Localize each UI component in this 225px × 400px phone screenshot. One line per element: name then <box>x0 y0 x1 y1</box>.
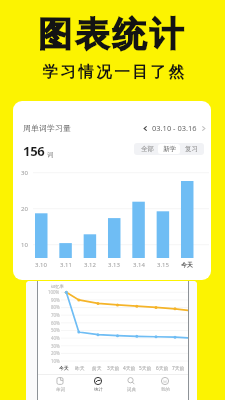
staticText: 全部 <box>141 145 154 153</box>
staticText: 3.13 <box>108 261 120 269</box>
staticText: 40% <box>51 335 60 341</box>
staticText: 3.11 <box>60 261 72 269</box>
staticText: 周单词学习量 <box>23 123 71 133</box>
staticText: 4天前 <box>123 365 136 372</box>
staticText: 50% <box>51 327 60 333</box>
staticText: 30% <box>51 343 60 349</box>
staticText: 3.10 <box>35 261 47 269</box>
staticText: 今天 <box>59 365 69 371</box>
staticText: 我的 <box>161 387 170 393</box>
button[interactable]: 4天前 <box>120 365 138 372</box>
button[interactable]: 7天前 <box>169 365 187 372</box>
staticText: 20 <box>21 205 28 213</box>
staticText: 记忆率 <box>51 284 64 289</box>
button[interactable]: 全部 <box>136 144 158 154</box>
button[interactable]: 6天前 <box>153 365 171 372</box>
staticText: 图表统计 <box>38 13 187 56</box>
button[interactable]: 词典 <box>120 377 142 393</box>
button[interactable]: 今天 <box>55 365 73 371</box>
button[interactable]: 昨天 <box>71 365 89 371</box>
staticText: 80% <box>51 304 60 310</box>
staticText: 70% <box>51 312 60 318</box>
staticText: 7天前 <box>172 365 185 372</box>
staticText: 单词 <box>56 387 65 393</box>
staticText: 156 <box>23 142 45 160</box>
button[interactable]: Date range <box>142 123 207 133</box>
staticText: 3.12 <box>84 261 96 269</box>
button[interactable]: 新学 <box>158 144 180 154</box>
staticText: 100% <box>48 289 60 295</box>
staticText: 词 <box>47 151 54 159</box>
staticText: 90% <box>51 297 60 303</box>
staticText: 60% <box>51 320 60 326</box>
staticText: 3.14 <box>133 261 145 269</box>
staticText: 复习 <box>185 145 198 153</box>
staticText: 3.15 <box>157 261 169 269</box>
staticText: 03.10 - 03.16 <box>152 123 197 133</box>
staticText: 20% <box>51 350 60 356</box>
staticText: 学习情况一目了然 <box>41 62 185 82</box>
staticText: 6天前 <box>156 365 169 372</box>
staticText: 3天前 <box>107 365 120 372</box>
staticText: 统计 <box>94 387 103 393</box>
button[interactable]: 我的 <box>154 377 176 393</box>
button[interactable]: 3天前 <box>104 365 122 372</box>
staticText: 5天前 <box>139 365 152 372</box>
button[interactable]: 复习 <box>180 144 202 154</box>
button[interactable]: 5天前 <box>136 365 154 372</box>
staticText: 词典 <box>127 387 136 393</box>
button[interactable]: 单词 <box>49 377 71 393</box>
staticText: 30 <box>21 169 28 177</box>
staticText: 10% <box>51 358 60 364</box>
staticText: 新学 <box>163 145 176 153</box>
button[interactable]: 前天 <box>88 365 106 371</box>
staticText: 前天 <box>92 365 102 371</box>
button[interactable]: 统计 <box>87 377 109 393</box>
staticText: 昨天 <box>75 365 85 371</box>
staticText: 今天 <box>181 261 193 269</box>
staticText: 10 <box>21 241 28 249</box>
